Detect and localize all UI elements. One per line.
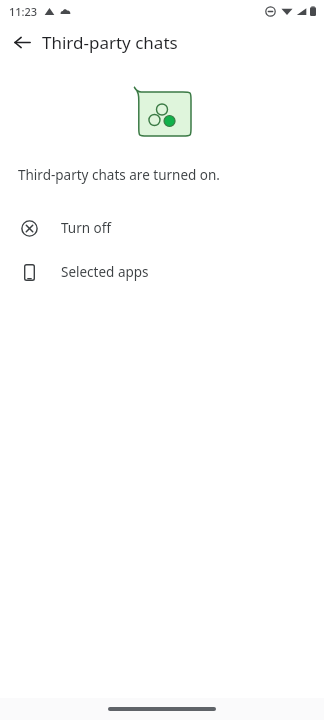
staticText: Third-party chats are turned on. bbox=[18, 166, 220, 184]
other: Turn off bbox=[18, 217, 40, 239]
button[interactable]: Selected apps bbox=[0, 250, 324, 294]
button[interactable]: Turn off bbox=[0, 206, 324, 250]
other: Selected apps bbox=[18, 261, 40, 283]
staticText: Third-party chats bbox=[42, 31, 178, 54]
staticText: Turn off bbox=[61, 219, 112, 237]
staticText: Selected apps bbox=[61, 263, 149, 281]
button[interactable]: Back bbox=[8, 28, 36, 56]
staticText: 11:23 bbox=[9, 4, 38, 19]
